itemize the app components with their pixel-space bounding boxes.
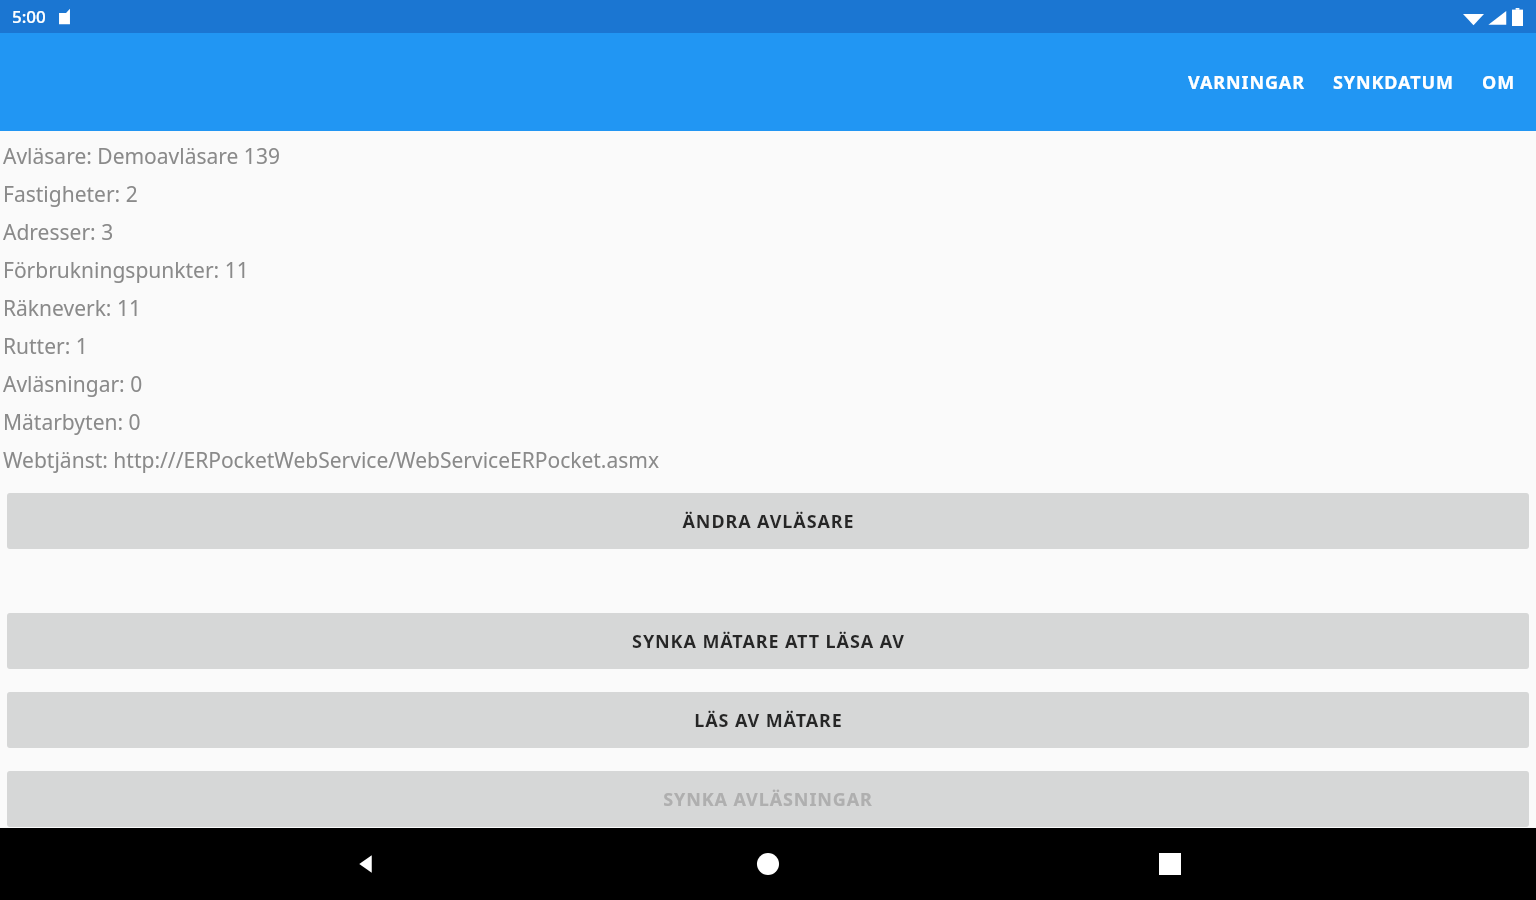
staticText: Rutter: 1	[3, 332, 88, 361]
staticText: VARNINGAR	[1188, 70, 1305, 95]
staticText: Adresser: 3	[3, 218, 114, 247]
button[interactable]: Back	[330, 828, 402, 900]
staticText: SYNKA AVLÄSNINGAR	[663, 787, 873, 812]
staticText: OM	[1482, 70, 1516, 95]
button[interactable]: LÄS AV MÄTARE	[7, 692, 1529, 748]
button[interactable]: SYNKDATUM	[1319, 60, 1468, 105]
staticText: Förbrukningspunkter: 11	[3, 256, 249, 285]
staticText: Mätarbyten: 0	[3, 408, 141, 437]
button[interactable]: ÄNDRA AVLÄSARE	[7, 493, 1529, 549]
button[interactable]: Home	[732, 828, 804, 900]
button[interactable]: VARNINGAR	[1174, 60, 1319, 105]
button[interactable]: Recent apps	[1134, 828, 1206, 900]
button[interactable]: SYNKA MÄTARE ATT LÄSA AV	[7, 613, 1529, 669]
staticText: Avläsare: Demoavläsare 139	[3, 142, 280, 171]
staticText: SYNKDATUM	[1333, 70, 1454, 95]
button: SYNKA AVLÄSNINGAR	[7, 771, 1529, 827]
staticText: 5:00	[12, 5, 46, 28]
staticText: Webtjänst: http:///ERPocketWebService/We…	[3, 446, 660, 475]
staticText: LÄS AV MÄTARE	[694, 708, 843, 733]
staticText: SYNKA MÄTARE ATT LÄSA AV	[632, 629, 905, 654]
staticText: Avläsningar: 0	[3, 370, 143, 399]
staticText: Fastigheter: 2	[3, 180, 138, 209]
staticText: ÄNDRA AVLÄSARE	[682, 509, 855, 534]
button[interactable]: OM	[1468, 60, 1530, 105]
staticText: Räkneverk: 11	[3, 294, 141, 323]
